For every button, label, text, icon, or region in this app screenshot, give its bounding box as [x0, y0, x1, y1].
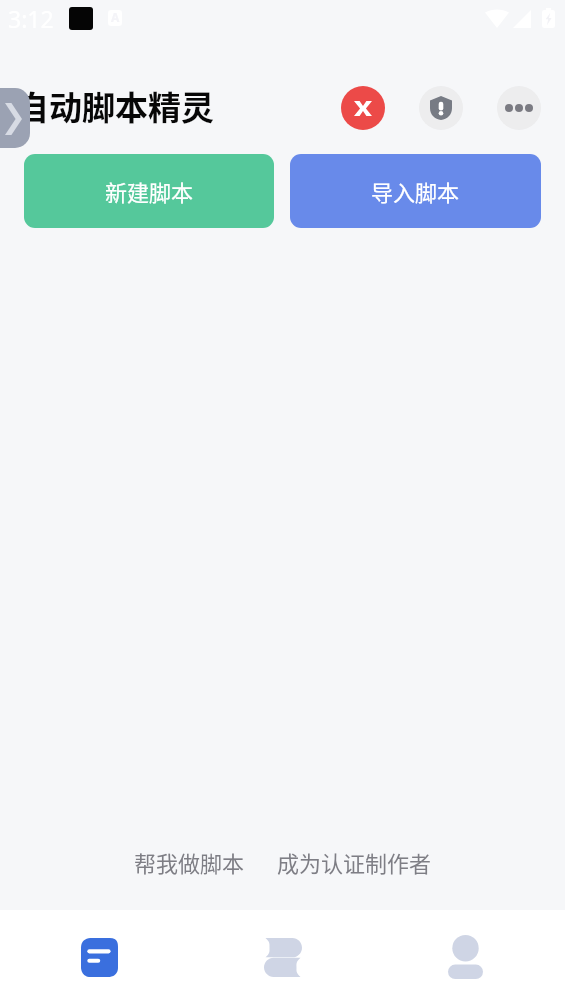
staticText: 导入脚本	[371, 175, 460, 207]
staticText: 帮我做脚本	[134, 846, 245, 878]
button[interactable]: 导入脚本	[290, 154, 541, 228]
button[interactable]: Scripts	[8, 910, 191, 1004]
staticText: 新建脚本	[105, 175, 194, 207]
staticText: 自动脚本精灵	[16, 82, 214, 130]
button[interactable]: 成为认证制作者	[272, 843, 437, 881]
button[interactable]: Tasks	[191, 910, 374, 1004]
button[interactable]: Stop	[341, 86, 385, 130]
staticText: 成为认证制作者	[277, 846, 432, 878]
button[interactable]: Expand panel	[0, 88, 30, 148]
button[interactable]: 帮我做脚本	[129, 843, 250, 881]
staticText: A	[111, 10, 120, 25]
staticText: 3:12	[8, 3, 54, 34]
button[interactable]: Warning	[419, 86, 463, 130]
button[interactable]: Profile	[374, 910, 557, 1004]
button[interactable]: 新建脚本	[24, 154, 274, 228]
button[interactable]: More options	[497, 86, 541, 130]
